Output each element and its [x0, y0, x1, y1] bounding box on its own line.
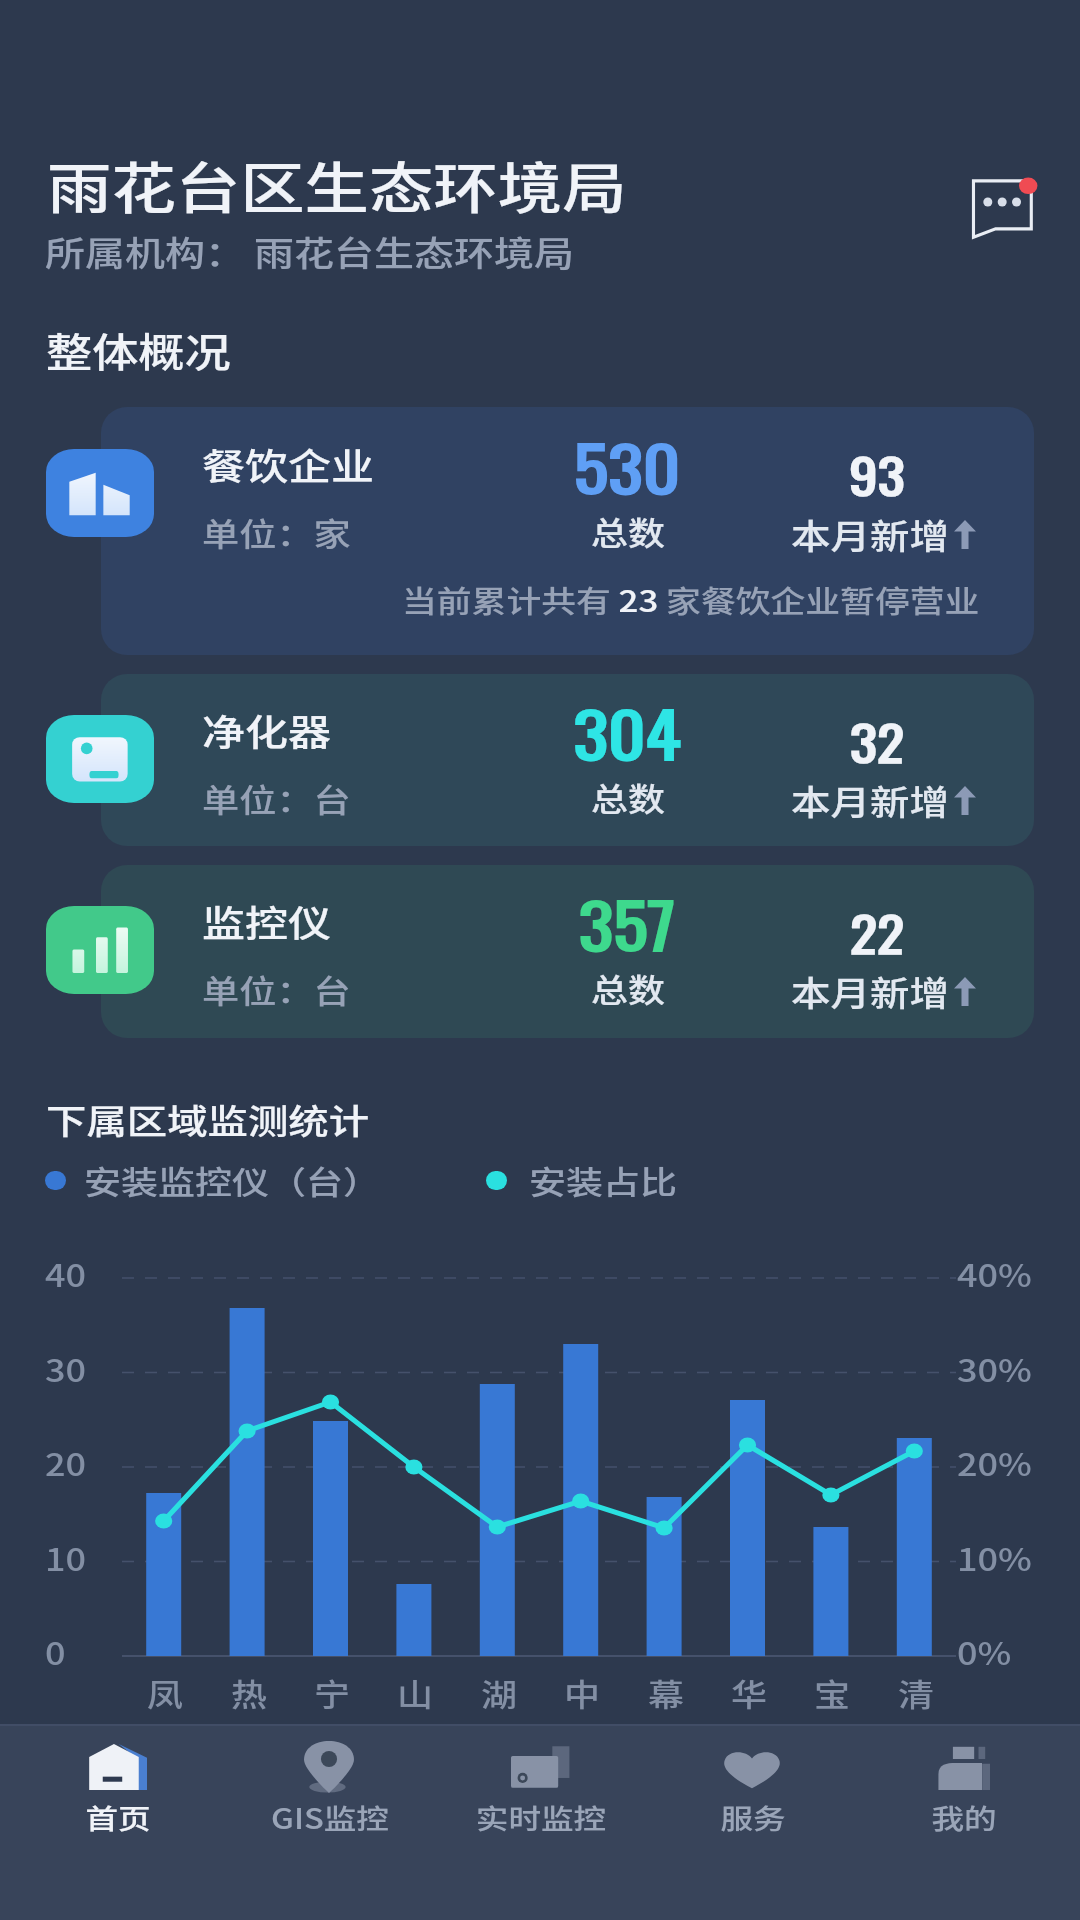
staticText: 所属机构： 雨花台生态环境局 [45, 227, 574, 276]
staticText: 20 [45, 1440, 87, 1484]
staticText: 单位：台 [202, 775, 351, 821]
button[interactable] [101, 407, 1034, 655]
button[interactable]: 服务 [647, 1730, 857, 1850]
staticText: 热 [209, 1670, 289, 1714]
staticText: 安装监控仪（台） [84, 1157, 380, 1203]
staticText: 服务 [653, 1797, 853, 1837]
staticText: 清 [876, 1670, 956, 1714]
staticText: 本月新增 [791, 967, 949, 1015]
staticText: 我的 [864, 1797, 1064, 1837]
staticText: 0 [45, 1629, 66, 1673]
staticText: 304 [477, 687, 777, 778]
staticText: 宝 [792, 1670, 872, 1714]
staticText: 93 [727, 439, 1027, 510]
staticText: 单位：家 [202, 509, 351, 555]
staticText: 下属区域监测统计 [46, 1094, 370, 1143]
staticText: 单位：台 [202, 966, 351, 1012]
staticText: 40% [957, 1251, 1032, 1295]
staticText: 中 [542, 1670, 622, 1714]
button[interactable]: GIS监控 [224, 1730, 434, 1850]
staticText: 本月新增 [791, 776, 949, 824]
staticText: 32 [727, 706, 1027, 777]
button[interactable]: 我的 [858, 1730, 1068, 1850]
staticText: 宁 [292, 1670, 372, 1714]
staticText: 本月新增 [791, 510, 949, 558]
staticText: 30 [45, 1346, 87, 1390]
staticText: 10% [957, 1535, 1032, 1579]
staticText: 530 [477, 421, 777, 512]
staticText: GIS监控 [230, 1797, 430, 1837]
staticText: 整体概况 [46, 321, 231, 378]
staticText: 幕 [626, 1670, 706, 1714]
staticText: 总数 [478, 774, 778, 820]
staticText: 40 [45, 1251, 87, 1295]
staticText: 22 [727, 897, 1027, 968]
button[interactable]: 实时监控 [435, 1730, 645, 1850]
staticText: 监控仪 [202, 894, 331, 947]
staticText: 实时监控 [441, 1797, 641, 1837]
button[interactable] [101, 865, 1034, 1038]
staticText: 当前累计共有 23 家餐饮企业暂停营业 [402, 578, 980, 620]
staticText: 湖 [459, 1670, 539, 1714]
staticText: 首页 [18, 1797, 218, 1837]
staticText: 餐饮企业 [202, 437, 374, 490]
button[interactable]: 首页 [12, 1730, 222, 1850]
staticText: 357 [477, 878, 777, 969]
staticText: 10 [45, 1535, 87, 1579]
staticText: 安装占比 [529, 1157, 677, 1203]
staticText: 20% [957, 1440, 1032, 1484]
staticText: 净化器 [202, 703, 331, 756]
button[interactable]: 消息 [962, 172, 1044, 238]
staticText: 总数 [478, 965, 778, 1011]
staticText: 雨花台区生态环境局 [47, 144, 627, 223]
button[interactable] [101, 674, 1034, 846]
staticText: 总数 [478, 508, 778, 554]
staticText: 山 [375, 1670, 455, 1714]
staticText: 华 [709, 1670, 789, 1714]
staticText: 0% [957, 1629, 1012, 1673]
staticText: 30% [957, 1346, 1032, 1390]
staticText: 凤 [125, 1670, 205, 1714]
